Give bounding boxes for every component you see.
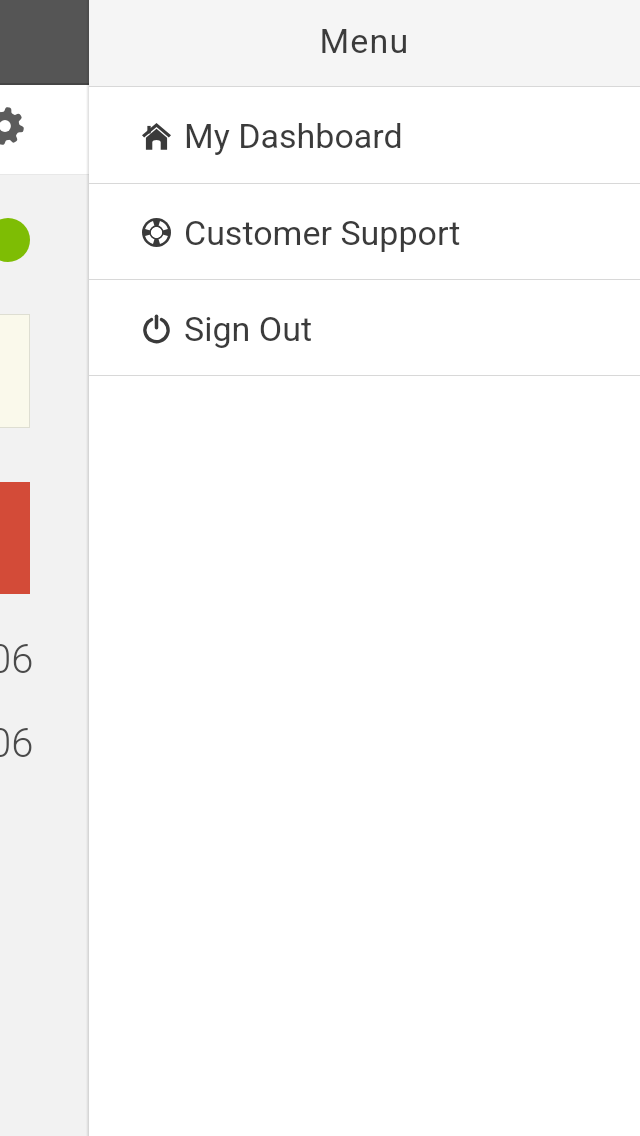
button[interactable]: Customer Support [89,184,640,279]
button[interactable]: Close navigation drawer [0,0,89,1136]
staticText: 06 [0,636,34,683]
staticText: Customer Support [184,213,461,253]
button[interactable]: My Dashboard [89,87,640,183]
staticText: My Dashboard [184,116,403,156]
staticText: 06 [0,720,34,767]
button[interactable]: Settings [0,95,36,157]
staticText: Sign Out [184,309,313,349]
staticText: Menu [319,21,410,61]
button[interactable]: Sign Out [89,280,640,375]
